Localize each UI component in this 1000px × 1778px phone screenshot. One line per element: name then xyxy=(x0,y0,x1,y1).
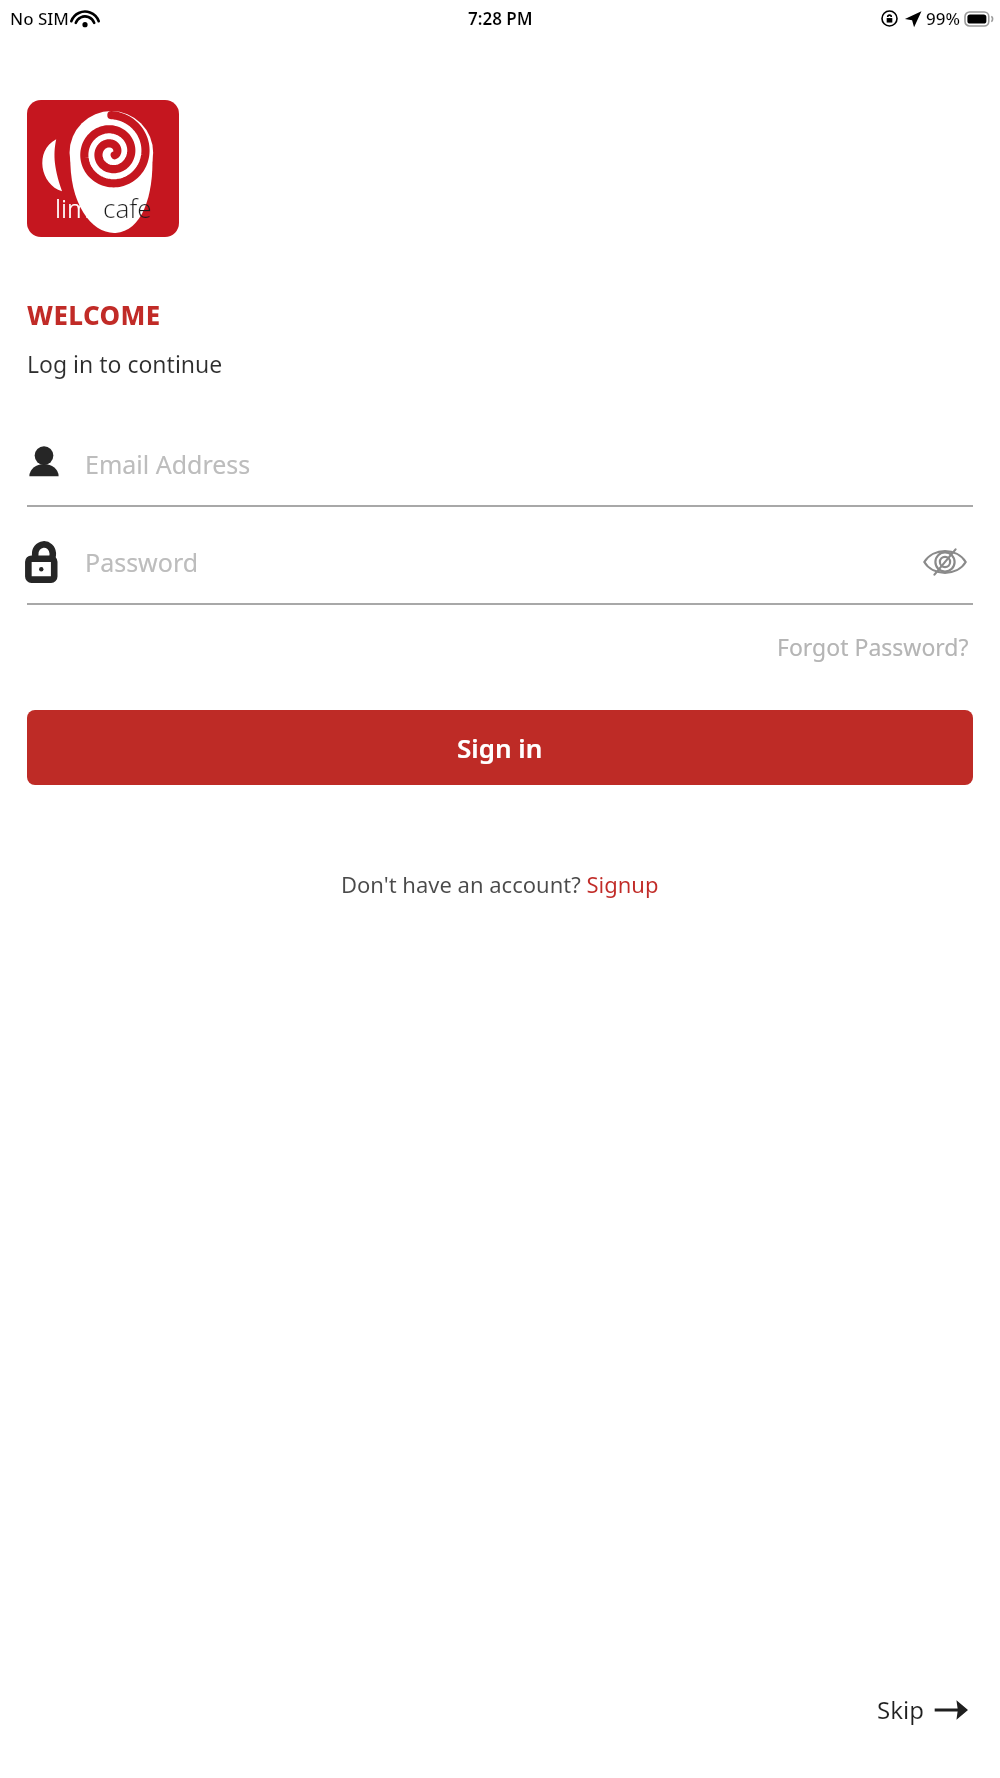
button[interactable]: Sign in xyxy=(27,710,973,785)
staticText: cafe xyxy=(103,190,152,225)
button[interactable]: Skip xyxy=(869,1687,976,1732)
staticText: Log in to continue xyxy=(27,348,223,379)
staticText: Skip xyxy=(877,1693,924,1726)
staticText: 99% xyxy=(926,7,960,30)
button[interactable]: Email Address xyxy=(27,435,973,507)
staticText: Don't have an account? Signup xyxy=(341,869,659,899)
staticText: Forgot Password? xyxy=(777,631,969,662)
staticText: Password xyxy=(85,545,199,579)
staticText: Sign in xyxy=(457,730,543,765)
staticText: 7:28 PM xyxy=(468,7,533,30)
staticText: WELCOME xyxy=(27,297,161,332)
button[interactable]: Forgot Password? xyxy=(773,625,973,668)
button[interactable]: Don't have an account? Signup xyxy=(335,863,665,905)
staticText: lims xyxy=(55,190,103,225)
staticText: No SIM xyxy=(10,7,69,30)
staticText: Email Address xyxy=(85,447,251,481)
button[interactable]: Show password xyxy=(917,534,973,590)
button[interactable]: Password xyxy=(27,533,973,605)
